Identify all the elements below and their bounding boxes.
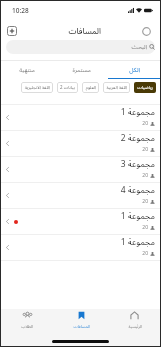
button[interactable]: مجموعة 3: [0, 157, 161, 182]
staticText: مجموعة 1: [120, 103, 155, 121]
staticText: 20: [142, 172, 148, 179]
button[interactable]: منتهية: [0, 61, 54, 79]
staticText: مجموعة 1: [120, 207, 155, 225]
staticText: 20: [142, 250, 148, 257]
staticText: مستمرة: [72, 64, 91, 77]
button[interactable]: اللغة الانجليزية: [21, 82, 53, 93]
staticText: البحث: [131, 41, 147, 54]
staticText: مجموعة 2: [120, 129, 155, 147]
button[interactable]: الطلاب: [0, 309, 54, 333]
button[interactable]: رياضيات: [134, 82, 156, 93]
staticText: المسافات: [73, 322, 90, 331]
button[interactable]: بيانات 2: [57, 82, 78, 93]
button[interactable]: الرئيسية: [108, 309, 161, 333]
staticText: المسافات: [68, 23, 101, 40]
staticText: الطلاب: [21, 322, 33, 331]
staticText: 20: [142, 146, 148, 153]
staticText: الكل: [129, 64, 140, 77]
button[interactable]: Add: [7, 26, 17, 36]
button[interactable]: مستمرة: [54, 61, 108, 79]
button[interactable]: اللغة العربية: [103, 82, 130, 93]
staticText: 20: [142, 224, 148, 231]
button[interactable]: مجموعة 1: [0, 105, 161, 130]
button[interactable]: المسافات: [54, 309, 108, 333]
staticText: اللغة الانجليزية: [24, 83, 50, 93]
button[interactable]: مجموعة 1: [0, 209, 161, 234]
button[interactable]: Profile: [142, 27, 151, 36]
staticText: مجموعة 4: [120, 181, 155, 199]
staticText: بيانات 2: [60, 83, 75, 93]
button[interactable]: العلوم: [82, 82, 99, 93]
staticText: مجموعة 1: [120, 233, 155, 251]
staticText: اللغة العربية: [106, 83, 127, 93]
button[interactable]: البحث: [6, 40, 155, 54]
staticText: رياضيات: [137, 83, 153, 93]
staticText: الرئيسية: [128, 322, 142, 331]
button[interactable]: الكل: [108, 61, 161, 79]
staticText: مجموعة 3: [120, 155, 155, 173]
button[interactable]: مجموعة 1: [0, 235, 161, 260]
button[interactable]: مجموعة 4: [0, 183, 161, 208]
staticText: 20: [142, 198, 148, 205]
staticText: 20: [142, 120, 148, 127]
staticText: 10:28: [12, 6, 29, 15]
staticText: العلوم: [85, 83, 96, 93]
button[interactable]: مجموعة 2: [0, 131, 161, 156]
staticText: منتهية: [19, 64, 35, 77]
